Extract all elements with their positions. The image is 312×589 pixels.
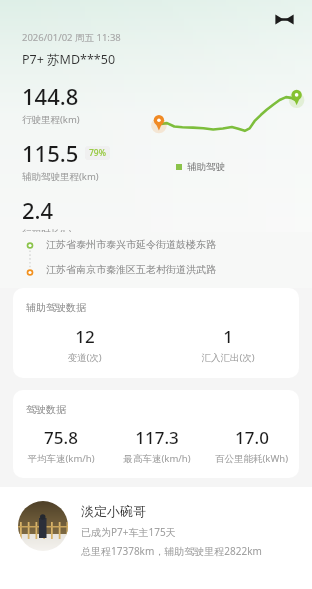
- staticText: 总里程17378km，辅助驾驶里程2822km: [81, 544, 262, 558]
- staticText: P7+ 苏MD***50: [22, 51, 116, 68]
- staticText: 辅助驾驶数据: [26, 301, 86, 314]
- staticText: 1: [223, 325, 233, 348]
- staticText: 行程时长(h): [22, 227, 72, 232]
- staticText: 最高车速(km/h): [123, 452, 191, 465]
- staticText: 百公里能耗(kWh): [215, 452, 288, 465]
- staticText: 辅助驾驶: [187, 161, 225, 173]
- staticText: 淡定小碗哥: [81, 503, 146, 519]
- staticText: 12: [75, 325, 95, 348]
- button[interactable]: 驾驶数据: [13, 390, 299, 478]
- staticText: 115.5: [22, 138, 79, 168]
- button[interactable]: Close: [269, 4, 299, 34]
- staticText: 17.0: [235, 426, 269, 449]
- button[interactable]: 辅助驾驶数据: [13, 288, 299, 378]
- staticText: 117.3: [135, 426, 179, 449]
- staticText: 辅助驾驶里程(km): [22, 170, 99, 183]
- staticText: 江苏省南京市秦淮区五老村街道洪武路: [46, 263, 216, 276]
- staticText: 79%: [89, 147, 106, 159]
- staticText: 2026/01/02 周五 11:38: [22, 31, 121, 44]
- staticText: 行驶里程(km): [22, 113, 80, 126]
- staticText: 已成为P7+车主175天: [81, 525, 176, 539]
- staticText: 变道(次): [67, 351, 102, 364]
- staticText: 驾驶数据: [26, 403, 66, 416]
- staticText: 平均车速(km/h): [27, 452, 95, 465]
- staticText: 江苏省泰州市泰兴市延令街道鼓楼东路: [46, 238, 216, 251]
- staticText: 2.4: [22, 195, 54, 225]
- staticText: 75.8: [44, 426, 78, 449]
- staticText: 144.8: [22, 81, 79, 111]
- staticText: 汇入汇出(次): [201, 351, 255, 364]
- button[interactable]: 淡定小碗哥: [0, 487, 312, 589]
